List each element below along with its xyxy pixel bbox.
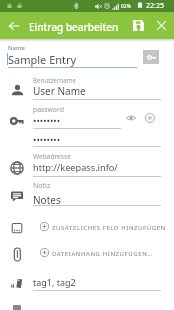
button[interactable]: Back (2, 14, 26, 38)
staticText: •••••••• (33, 133, 61, 145)
staticText: ZUSÄTZLICHES FELD HINZUFÜGEN (52, 224, 166, 232)
staticText: DATEIANHANG HINZUFÜGEN… (52, 250, 153, 258)
staticText: tag1, tag2 (33, 276, 76, 288)
staticText: 62% (121, 3, 131, 10)
button[interactable]: Generate password (143, 111, 157, 125)
staticText: Webadresse (33, 152, 71, 161)
staticText: Sample Entry (8, 52, 77, 67)
button[interactable]: Close (150, 14, 173, 37)
staticText: password (33, 105, 64, 114)
button[interactable]: Choose icon (143, 50, 159, 64)
staticText: Notes (33, 193, 61, 207)
button[interactable]: Save (128, 15, 149, 36)
staticText: User Name (33, 84, 86, 98)
staticText: Notiz (33, 181, 51, 191)
staticText: Benutzername (33, 76, 76, 84)
button[interactable]: •••••••• (33, 133, 161, 147)
button[interactable]: DATEIANHANG HINZUFÜGEN… (0, 243, 174, 265)
button[interactable]: User name (0, 74, 174, 102)
staticText: Name (8, 44, 25, 52)
button[interactable]: tag1, tag2 (0, 272, 174, 294)
staticText: •••••••• (33, 114, 61, 126)
button[interactable]: Password (0, 104, 174, 131)
staticText: http://keepass.info/ (33, 161, 118, 174)
button[interactable]: Name (0, 42, 140, 69)
staticText: Eintrag bearbeiten (29, 20, 119, 34)
button[interactable]: Show password (124, 111, 138, 125)
staticText: 22:25 (146, 1, 164, 11)
button[interactable]: Web address (0, 151, 174, 179)
button[interactable]: Notes (0, 180, 174, 208)
button[interactable]: ZUSÄTZLICHES FELD HINZUFÜGEN (0, 217, 174, 239)
